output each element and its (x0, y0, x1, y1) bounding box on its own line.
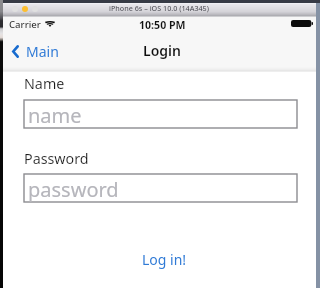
staticText: Name (24, 74, 65, 93)
staticText: name (28, 102, 82, 129)
button[interactable]: password (24, 174, 297, 202)
staticText: 10:50 PM (139, 18, 186, 32)
staticText: password (28, 176, 119, 203)
staticText: iPhone 6s – iOS 10.0 (14A345) (109, 3, 209, 13)
staticText: Main (26, 42, 59, 61)
button[interactable]: Main (4, 37, 62, 66)
staticText: Login (143, 41, 181, 60)
button[interactable]: name (24, 100, 297, 128)
button[interactable]: Log in! (8, 248, 320, 270)
staticText: Password (24, 149, 89, 168)
staticText: Carrier (9, 18, 41, 31)
staticText: Log in! (142, 250, 187, 269)
